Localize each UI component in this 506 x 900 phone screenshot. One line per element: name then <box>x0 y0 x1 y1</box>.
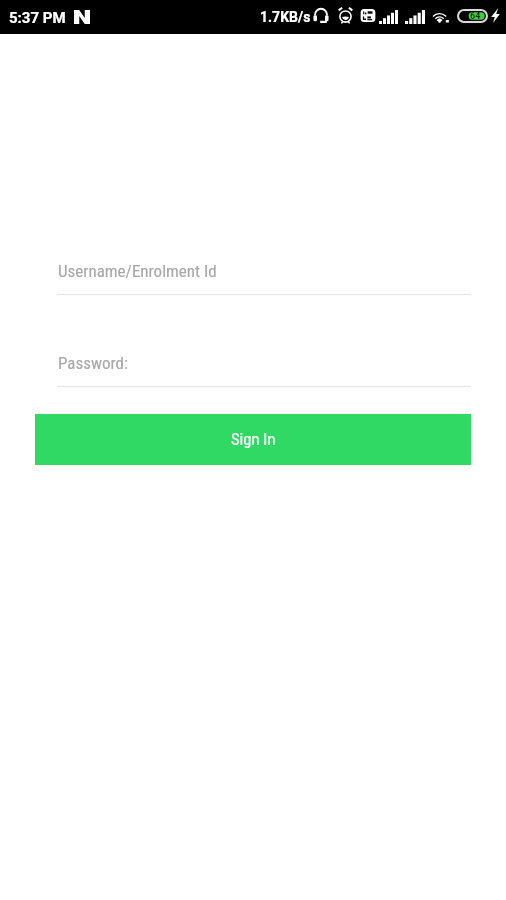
button[interactable]: Password input field <box>57 344 471 387</box>
staticText: 64 <box>470 11 481 22</box>
other: SIM 1 signal <box>379 10 398 24</box>
button[interactable]: Sign In <box>35 414 471 465</box>
staticText: 5:37 PM <box>9 9 66 27</box>
other: Vibrate mode <box>360 8 376 23</box>
other: Battery 64 percent <box>457 9 488 23</box>
other: NFC enabled <box>74 10 90 24</box>
other: Alarm set <box>337 7 354 24</box>
button[interactable]: Username or Enrolment Id input field <box>57 252 471 295</box>
other: SIM 2 signal <box>405 10 425 24</box>
staticText: Username/Enrolment Id <box>58 261 217 281</box>
staticText: Sign In <box>231 430 276 449</box>
other: Headset connected <box>313 8 329 23</box>
staticText: 1.7KB/s <box>260 9 311 25</box>
other: Wi-Fi connected <box>431 9 450 23</box>
other: Charging <box>491 8 500 23</box>
staticText: Password: <box>58 353 128 373</box>
